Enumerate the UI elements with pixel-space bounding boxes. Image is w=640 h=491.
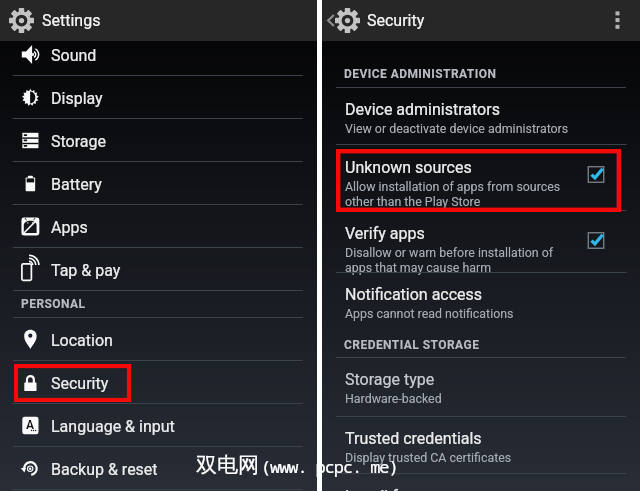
staticText: Display [51, 89, 103, 108]
button[interactable]: Backup & reset [0, 447, 317, 490]
staticText: 双电网 [196, 452, 259, 478]
staticText: Tap & pay [51, 261, 121, 280]
staticText: Settings [42, 11, 101, 30]
staticText: Backup & reset [51, 460, 158, 479]
staticText: PERSONAL [21, 297, 86, 311]
button[interactable]: Sound [0, 33, 317, 76]
button[interactable]: Battery [0, 162, 317, 205]
staticText: (www. pcpc. me) [261, 455, 398, 478]
staticText: Location [51, 331, 113, 350]
staticText: Display trusted CA certificates [345, 450, 512, 465]
staticText: View or deactivate device administrators [345, 121, 569, 136]
staticText: Hardware-backed [345, 391, 442, 406]
staticText: Disallow or warn before installation of … [345, 245, 554, 275]
button[interactable]: Storage type [322, 357, 640, 417]
staticText: Allow installation of apps from sources … [345, 179, 561, 209]
button[interactable]: More options [603, 0, 640, 41]
staticText: Install from storage [345, 487, 484, 491]
staticText: Language & input [51, 417, 175, 436]
button[interactable]: Back [322, 0, 640, 41]
button[interactable]: Notification access [322, 272, 640, 322]
button[interactable]: Trusted credentials [322, 416, 640, 474]
staticText: Trusted credentials [345, 429, 482, 448]
staticText: Verify apps [345, 224, 425, 243]
staticText: Apps cannot read notifications [345, 306, 514, 321]
button[interactable]: Install from storage [322, 474, 640, 491]
staticText: Unknown sources [345, 158, 472, 177]
button[interactable]: Apps [0, 205, 317, 248]
other: Back [322, 0, 640, 41]
button[interactable]: Security [0, 361, 317, 404]
button[interactable]: Verify apps [322, 211, 640, 273]
staticText: Sound [51, 46, 97, 65]
staticText: A [26, 418, 35, 432]
staticText: DEVICE ADMINISTRATION [344, 67, 497, 81]
staticText: Security [51, 374, 109, 393]
staticText: Notification access [345, 285, 483, 304]
button[interactable]: Device administrators [322, 87, 640, 145]
button[interactable]: Tap & pay [0, 248, 317, 291]
button[interactable]: Settings [0, 0, 317, 41]
staticText: Apps [51, 218, 88, 237]
staticText: Storage type [345, 370, 435, 389]
staticText: Battery [51, 175, 102, 194]
staticText: Storage [51, 132, 106, 151]
button[interactable]: Location [0, 318, 317, 361]
button[interactable]: Display [0, 76, 317, 119]
button[interactable]: A [0, 404, 317, 447]
staticText: CREDENTIAL STORAGE [344, 338, 480, 352]
button[interactable]: Storage [0, 119, 317, 162]
staticText: Device administrators [345, 100, 500, 119]
button[interactable]: Unknown sources [322, 145, 640, 211]
staticText: Security [367, 11, 425, 30]
